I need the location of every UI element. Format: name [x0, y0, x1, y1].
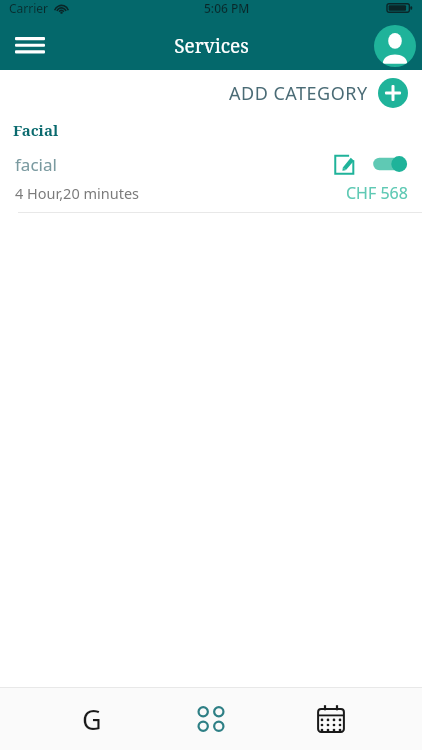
button[interactable]: Calendar [303, 691, 359, 747]
staticText: 5:06 PM [204, 0, 250, 16]
button[interactable]: Edit service [328, 148, 360, 180]
button[interactable]: facial [0, 144, 422, 212]
button[interactable]: Menu [8, 24, 52, 68]
button[interactable]: Profile [374, 25, 416, 67]
staticText: facial [15, 153, 57, 176]
button[interactable]: Home [64, 691, 120, 747]
button[interactable]: ADD CATEGORY [229, 78, 408, 108]
staticText: Services [174, 33, 249, 59]
staticText: CHF 568 [346, 182, 408, 204]
staticText: ADD CATEGORY [229, 81, 368, 106]
staticText: 4 Hour,20 minutes [15, 183, 140, 203]
staticText: Facial [13, 120, 59, 140]
staticText: Carrier [9, 0, 49, 16]
button[interactable]: Toggle service active [370, 152, 410, 176]
button[interactable]: Services [183, 691, 239, 747]
staticText: G [82, 701, 102, 738]
